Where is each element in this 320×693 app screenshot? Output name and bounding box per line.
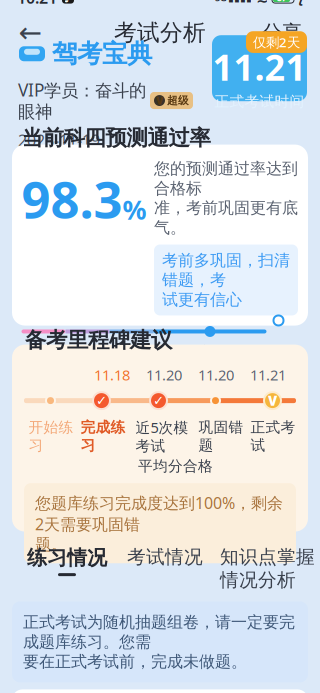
staticText: 11.21 [250,365,286,385]
button[interactable]: 分享 [254,13,310,53]
staticText: 98.3 [21,165,122,232]
staticText: ♪ [63,0,72,5]
staticText: ✓ [96,393,107,408]
staticText: 分享 [262,20,302,45]
staticText: 5G [215,0,227,4]
staticText: V [156,93,163,108]
staticText: % [122,192,146,227]
staticText: 正式考试时间 [214,93,304,111]
staticText: 不高 [183,343,213,361]
staticText: ϟ [296,0,303,6]
staticText: 11.20 [198,365,234,385]
staticText: 练习情况 [27,546,107,570]
staticText: 平均分合格 [138,457,213,475]
button[interactable]: 知识点掌握情况分析 [203,546,315,591]
staticText: 10:21 [17,0,57,8]
staticText: 仅剩2天 [253,33,300,51]
staticText: 正式考试为随机抽题组卷，请一定要完成题库练习。您需 要在正式考试前，完成未做题。 [23,612,295,671]
staticText: V [268,392,277,409]
staticText: ✓ [153,393,164,408]
staticText: 近5次模考试 [135,418,188,455]
staticText: 巩固错题 [198,418,243,454]
staticText: ≋ [256,0,268,6]
staticText: 考前多巩固，扫清错题，考 试更有信心 [162,250,290,309]
staticText: 2025-11-19 [18,130,100,151]
staticText: 11.18 [94,365,130,385]
button[interactable]: 练习情况 [27,546,107,576]
staticText: 知识点掌握情况分析 [220,546,315,591]
staticText: 考试情况 [127,546,203,568]
staticText: 正式考试 [250,418,295,454]
staticText: ▮▮▮▮ [228,0,252,4]
staticText: 11.20 [146,365,182,385]
staticText: 67 [276,0,286,4]
staticText: 开始练习 [28,418,73,454]
staticText: 当前科四预测通过率 [21,125,210,151]
staticText: 超级 [167,94,189,107]
staticText: VIP学员：奋斗的眼神 [18,78,146,123]
staticText: 考试分析 [114,19,206,46]
staticText: 您的预测通过率达到合格标 准，考前巩固更有底气。 [154,159,298,237]
staticText: 非常低 [23,343,68,361]
staticText: 完成练习 [80,418,125,454]
staticText: 11.21 [212,43,306,91]
button[interactable]: 返回 [10,13,50,53]
staticText: 您题库练习完成度达到100%，剩余2天需要巩固错 题。 [35,492,283,554]
staticText: 备考里程碑建议 [25,327,172,353]
button[interactable]: 考试情况 [107,546,203,568]
staticText: 合格 [255,343,285,361]
staticText: 很低 [111,343,141,361]
staticText: 驾考宝典 [52,38,152,69]
staticText: ← [18,17,41,48]
